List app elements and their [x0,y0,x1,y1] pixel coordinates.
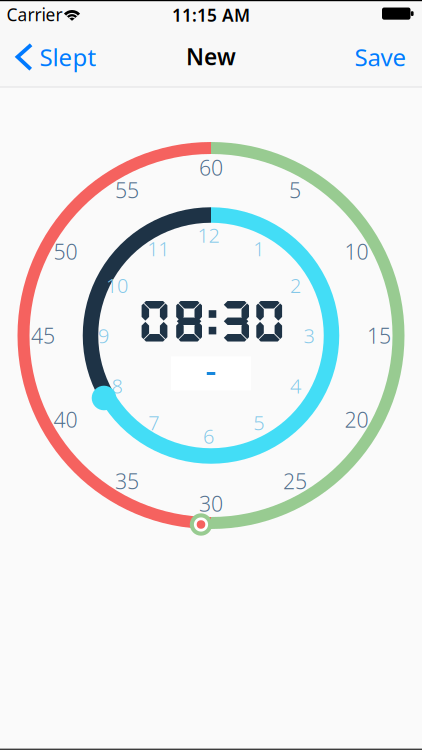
button[interactable]: Slept [15,41,96,73]
staticText: 55 [115,176,139,204]
staticText: 3 [303,322,314,349]
staticText: 20 [344,405,368,434]
staticText: 11 [147,235,169,262]
staticText: 40 [53,405,77,434]
staticText: 5 [289,176,301,204]
button[interactable]: Add note [171,356,251,390]
staticText: 30 [199,489,223,518]
staticText: 10 [106,272,128,299]
staticText: 7 [148,409,159,436]
staticText: 2 [290,272,301,299]
staticText: 15 [367,321,391,350]
staticText: 8 [111,372,122,399]
staticText: 1 [253,235,264,262]
button[interactable]: Adjust minutes [190,513,212,536]
staticText: 4 [290,372,301,399]
staticText: 25 [283,467,307,495]
staticText: 60 [199,153,223,182]
staticText: 12 [197,222,219,248]
staticText: Save [354,41,406,73]
staticText: Carrier [6,3,62,26]
staticText: 35 [115,467,139,495]
button[interactable]: Save [354,41,406,73]
staticText: New [186,41,236,71]
staticText: 10 [344,237,368,266]
button[interactable]: Adjust hours [92,386,116,410]
staticText: 9 [98,322,109,349]
staticText: 5 [253,409,264,436]
staticText: 6 [203,423,214,449]
staticText: 11:15 AM [172,3,250,26]
staticText: Slept [39,41,96,73]
staticText: 45 [31,321,55,350]
staticText: 50 [53,237,77,266]
